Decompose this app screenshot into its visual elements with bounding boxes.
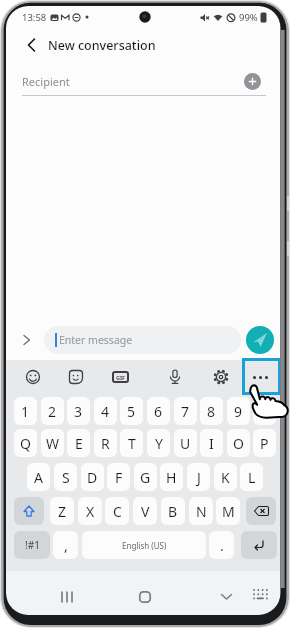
button[interactable]: W: [41, 429, 64, 457]
staticText: X: [86, 502, 95, 521]
staticText: Recipient: [22, 74, 70, 89]
staticText: ,: [64, 536, 68, 555]
button[interactable]: 7: [174, 397, 197, 425]
button[interactable]: C: [105, 497, 129, 525]
button[interactable]: ,: [53, 531, 78, 559]
button[interactable]: G: [134, 463, 157, 491]
button[interactable]: 6: [147, 397, 170, 425]
button[interactable]: O: [227, 429, 250, 457]
button[interactable]: 2: [41, 397, 64, 425]
staticText: B: [168, 502, 178, 521]
staticText: 5: [127, 402, 136, 421]
staticText: Enter message: [59, 333, 133, 347]
staticText: H: [166, 468, 177, 487]
button[interactable]: 4: [94, 397, 117, 425]
button[interactable]: [14, 497, 44, 525]
button[interactable]: P: [253, 429, 276, 457]
button[interactable]: 9: [227, 397, 250, 425]
staticText: G: [140, 468, 151, 487]
staticText: 4: [101, 402, 110, 421]
staticText: T: [128, 434, 136, 453]
staticText: W: [46, 434, 60, 453]
staticText: M: [222, 502, 235, 521]
staticText: 13:58: [22, 11, 47, 24]
staticText: V: [141, 502, 150, 521]
button[interactable]: Z: [50, 497, 74, 525]
staticText: S: [62, 468, 70, 487]
button[interactable]: L: [240, 463, 263, 491]
button[interactable]: D: [81, 463, 104, 491]
button[interactable]: E: [67, 429, 90, 457]
button[interactable]: [246, 326, 274, 354]
staticText: 0: [260, 402, 269, 421]
staticText: .: [220, 536, 224, 555]
button[interactable]: !#1: [14, 531, 50, 559]
button[interactable]: [68, 369, 84, 385]
button[interactable]: K: [214, 463, 237, 491]
staticText: I: [209, 434, 214, 453]
staticText: O: [233, 434, 244, 453]
staticText: L: [248, 468, 256, 487]
button[interactable]: [25, 369, 41, 385]
button[interactable]: U: [174, 429, 197, 457]
staticText: 6: [154, 402, 163, 421]
staticText: K: [221, 468, 230, 487]
staticText: GIF: [116, 374, 126, 381]
button[interactable]: V: [133, 497, 157, 525]
button[interactable]: A: [27, 463, 50, 491]
staticText: New conversation: [48, 37, 156, 54]
staticText: R: [101, 434, 110, 453]
staticText: Z: [58, 502, 67, 521]
staticText: J: [197, 468, 201, 487]
staticText: English (US): [122, 540, 167, 551]
button[interactable]: X: [78, 497, 102, 525]
button[interactable]: S: [54, 463, 77, 491]
button[interactable]: [252, 588, 269, 603]
staticText: N: [196, 502, 207, 521]
button[interactable]: J: [187, 463, 210, 491]
button[interactable]: [246, 497, 276, 525]
button[interactable]: 5: [120, 397, 143, 425]
button[interactable]: [241, 531, 277, 559]
button[interactable]: Y: [147, 429, 170, 457]
button[interactable]: 8: [200, 397, 223, 425]
staticText: U: [180, 434, 191, 453]
staticText: 99%: [239, 11, 258, 24]
staticText: 9: [234, 402, 243, 421]
button[interactable]: T: [120, 429, 143, 457]
button[interactable]: [167, 369, 183, 385]
button[interactable]: English (US): [82, 531, 206, 559]
staticText: A: [34, 468, 43, 487]
button[interactable]: R: [94, 429, 117, 457]
staticText: Y: [155, 434, 163, 453]
button[interactable]: 3: [67, 397, 90, 425]
button[interactable]: F: [107, 463, 130, 491]
button[interactable]: 0: [253, 397, 276, 425]
button[interactable]: Enter message: [44, 326, 241, 354]
button[interactable]: M: [216, 497, 240, 525]
staticText: Q: [20, 434, 31, 453]
button[interactable]: [253, 369, 273, 385]
button[interactable]: GIF: [112, 371, 129, 383]
button[interactable]: [220, 593, 233, 601]
staticText: D: [87, 468, 98, 487]
staticText: 1: [21, 402, 30, 421]
button[interactable]: [25, 38, 39, 52]
staticText: 7: [181, 402, 190, 421]
button[interactable]: 1: [14, 397, 37, 425]
button[interactable]: I: [200, 429, 223, 457]
button[interactable]: Q: [14, 429, 37, 457]
button[interactable]: B: [161, 497, 185, 525]
button[interactable]: [139, 591, 151, 603]
staticText: P: [260, 434, 269, 453]
button[interactable]: [213, 369, 229, 385]
button[interactable]: N: [189, 497, 213, 525]
staticText: F: [115, 468, 123, 487]
staticText: 2: [48, 402, 57, 421]
button[interactable]: [61, 591, 73, 603]
button[interactable]: [244, 73, 261, 90]
button[interactable]: [22, 334, 32, 346]
button[interactable]: .: [209, 531, 234, 559]
staticText: 8: [207, 402, 216, 421]
button[interactable]: H: [160, 463, 183, 491]
